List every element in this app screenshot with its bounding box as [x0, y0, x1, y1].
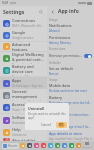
button[interactable]: Google — [0, 29, 47, 41]
button[interactable]: Help — [0, 126, 47, 138]
button[interactable]: Back — [49, 8, 57, 16]
staticText: Mobile data — [49, 83, 70, 88]
button[interactable]: Memory — [47, 118, 94, 130]
button[interactable]: App — [48, 143, 53, 148]
staticText: Usage — [49, 18, 58, 22]
staticText: App info — [58, 8, 79, 15]
staticText: Remove permissions if app is unused — [49, 53, 83, 58]
staticText: Default apps • App settings — [12, 84, 45, 88]
button[interactable]: Battery and device care — [0, 64, 47, 76]
staticText: Google services — [12, 36, 34, 40]
button[interactable]: Remove permissions if app is unused — [47, 51, 94, 60]
button[interactable]: About tablet — [0, 138, 47, 141]
staticText: Do you want to uninstall this app? — [28, 112, 67, 119]
staticText: Connections — [12, 18, 36, 23]
button[interactable]: Set as default — [47, 65, 94, 77]
staticText: Battery, Memory — [49, 41, 71, 45]
staticText: Download and install — [12, 121, 41, 125]
button[interactable]: App — [55, 143, 60, 148]
staticText: General management — [12, 89, 45, 99]
staticText: Accessibility — [12, 102, 35, 107]
staticText: Allowed — [49, 29, 60, 33]
staticText: No memory usage in last 3 hours — [49, 125, 92, 129]
button[interactable]: Cancel — [38, 122, 54, 128]
staticText: Vision • Hearing • Interaction — [12, 108, 45, 112]
button[interactable]: App — [34, 143, 39, 148]
button[interactable]: App — [69, 143, 74, 148]
staticText: No data used since last reset — [49, 89, 87, 93]
button[interactable]: Recents — [2, 143, 19, 149]
button[interactable]: Storage — [47, 106, 94, 118]
staticText: Software update — [12, 115, 43, 120]
staticText: Defaults — [49, 61, 61, 65]
button[interactable]: Software update — [0, 114, 47, 126]
staticText: 9:41 — [2, 1, 9, 5]
staticText: Permissions — [49, 35, 71, 40]
button[interactable]: Connections — [0, 17, 47, 29]
staticText: Storage • Memory — [12, 75, 37, 76]
staticText: Battery — [49, 95, 62, 100]
staticText: Contact us — [12, 133, 27, 137]
staticText: Screen time — [49, 47, 66, 51]
button[interactable]: OK — [56, 122, 67, 128]
button[interactable]: App — [41, 143, 46, 148]
staticText: No battery usage since last full charge — [49, 101, 92, 105]
staticText: Memory — [49, 119, 64, 124]
staticText: 25.40 MB used in internal storage — [49, 113, 92, 117]
button[interactable]: Show keyboard — [82, 142, 92, 149]
staticText: Usage — [49, 78, 58, 82]
button[interactable]: General management — [0, 89, 47, 101]
button[interactable]: App — [27, 143, 32, 148]
staticText: Notifications — [49, 23, 72, 28]
staticText: Language • Keyboard • Date and time — [12, 100, 45, 101]
staticText: Settings — [3, 8, 25, 15]
button[interactable]: App — [62, 143, 67, 148]
staticText: Google — [12, 30, 26, 35]
button[interactable]: App — [76, 143, 81, 148]
staticText: Advanced features — [12, 42, 45, 51]
button[interactable]: Mobile data — [47, 82, 94, 94]
staticText: About tablet — [12, 138, 36, 141]
staticText: Set as default — [49, 66, 73, 71]
staticText: Apps — [12, 78, 22, 83]
staticText: Wi-Fi • Bluetooth • Airplane mode — [12, 24, 45, 28]
button[interactable]: App — [20, 143, 25, 148]
button[interactable]: Digital Wellbeing & parental controls — [0, 52, 47, 64]
staticText: Not set — [49, 72, 59, 76]
staticText: Help — [12, 127, 21, 132]
button[interactable]: Battery — [47, 94, 94, 106]
staticText: App details in store — [49, 131, 83, 136]
staticText: App installed from Google Play Store — [49, 137, 94, 141]
staticText: Digital Wellbeing & parental controls — [12, 52, 45, 62]
staticText: OK — [59, 123, 64, 127]
staticText: Screen time • App timers • Bedtime — [12, 63, 45, 64]
button[interactable]: Accessibility — [0, 101, 47, 113]
button[interactable]: Notifications — [47, 22, 94, 34]
staticText: Battery and device care — [12, 64, 45, 74]
button[interactable]: Permissions — [47, 34, 94, 46]
button[interactable]: Apps — [0, 77, 47, 89]
button[interactable]: Search settings — [37, 8, 45, 16]
staticText: Keyboard — [82, 146, 92, 149]
staticText: Recents — [8, 144, 18, 148]
button[interactable]: Advanced features — [0, 42, 47, 51]
staticText: Cancel — [41, 123, 51, 127]
staticText: Uninstall — [28, 106, 45, 111]
